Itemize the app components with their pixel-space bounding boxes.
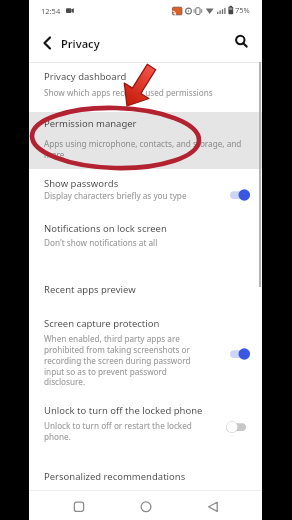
staticText: Show which apps recently used permission… [44, 87, 213, 98]
staticText: Display characters briefly as you type [44, 190, 187, 201]
staticText: more [44, 149, 65, 160]
button[interactable] [226, 420, 250, 434]
staticText: Unlock to turn off or restart the locked [44, 420, 192, 431]
staticText: phone. [44, 431, 71, 442]
staticText: Show passwords [44, 177, 119, 190]
staticText: recording the screen during password [44, 355, 191, 366]
button[interactable] [232, 31, 254, 53]
staticText: Don't show notifications at all [44, 237, 158, 248]
staticText: Apps using microphone, contacts, and sto… [44, 138, 242, 149]
staticText: disclosure. [44, 376, 86, 387]
button[interactable]: Show passwords [29, 169, 262, 212]
button[interactable] [68, 496, 90, 518]
button[interactable]: Personalized recommendations [29, 455, 262, 490]
staticText: When enabled, third party apps are [44, 333, 180, 344]
staticText: Unlock to turn off the locked phone [44, 404, 203, 417]
staticText: Permission manager [44, 117, 137, 130]
button[interactable]: Permission manager [29, 112, 262, 169]
button[interactable] [202, 496, 224, 518]
staticText: Notifications on lock screen [44, 222, 167, 235]
staticText: Personalized recommendations [44, 470, 186, 483]
staticText: 12:54 [41, 6, 61, 16]
staticText: input so as to prevent password [44, 366, 167, 377]
button[interactable]: Unlock to turn off the locked phone [29, 395, 262, 455]
button[interactable] [226, 347, 250, 361]
staticText: Screen capture protection [44, 317, 160, 330]
button[interactable]: Privacy dashboard [29, 63, 262, 112]
button[interactable]: Screen capture protection [29, 306, 262, 395]
staticText: Recent apps preview [44, 283, 136, 296]
button[interactable]: Notifications on lock screen [29, 212, 262, 255]
button[interactable]: Recent apps preview [29, 255, 262, 306]
button[interactable] [226, 188, 250, 202]
staticText: Privacy [61, 36, 100, 51]
staticText: Privacy dashboard [44, 70, 127, 83]
button[interactable] [135, 496, 157, 518]
staticText: 75% [235, 5, 250, 15]
staticText: prohibited from taking screenshots or [44, 344, 190, 355]
button[interactable] [39, 33, 55, 53]
